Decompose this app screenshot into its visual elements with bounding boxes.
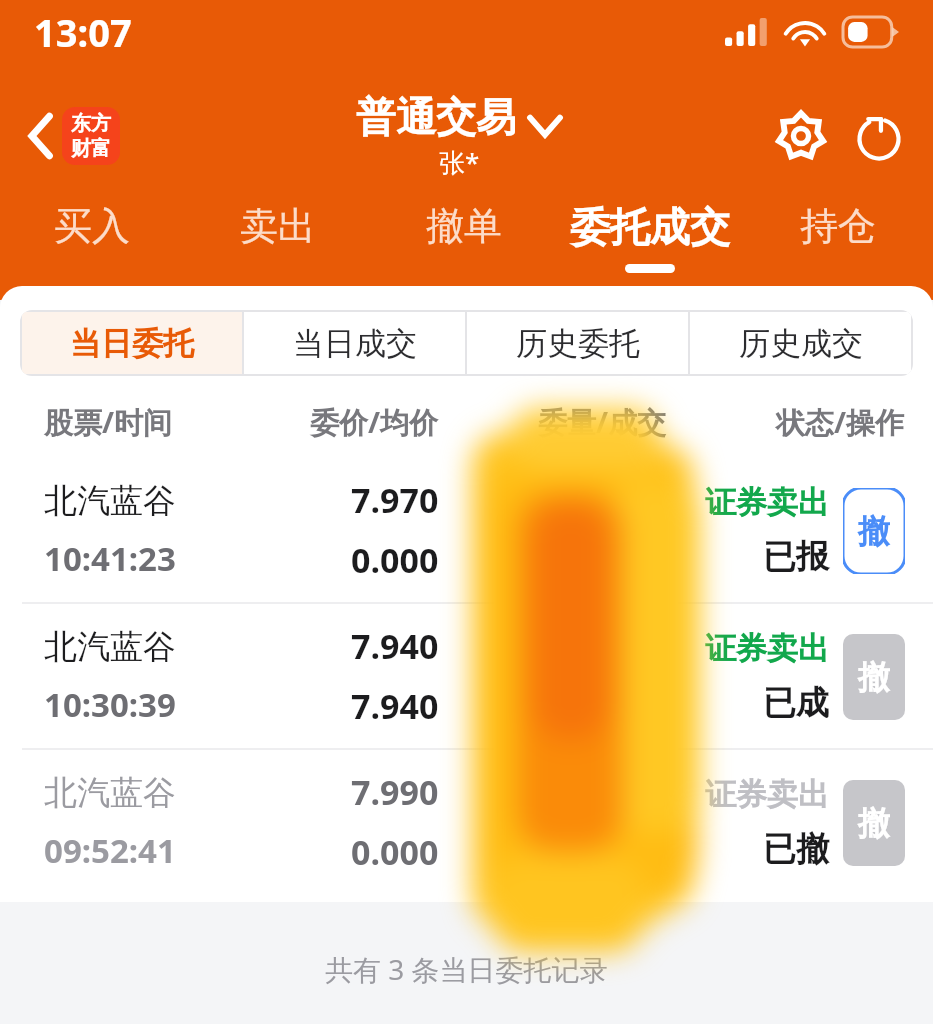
button[interactable]: 历史委托 bbox=[467, 312, 688, 374]
staticText: 撤单 bbox=[426, 202, 502, 250]
button[interactable]: 撤 bbox=[843, 488, 905, 574]
staticText: 历史委托 bbox=[516, 324, 640, 363]
button[interactable]: 北汽蓝谷 bbox=[0, 604, 933, 748]
staticText: 证券卖出 bbox=[705, 483, 829, 522]
staticText: 委价/均价 bbox=[310, 402, 439, 442]
staticText: 0.000 bbox=[351, 537, 439, 583]
button[interactable]: 委托成交 bbox=[546, 198, 754, 292]
staticText: 0.000 bbox=[351, 829, 439, 875]
staticText: 历史成交 bbox=[739, 324, 863, 363]
staticText: 已成 bbox=[763, 682, 829, 724]
button[interactable]: 撤 bbox=[843, 780, 905, 866]
staticText: 7.970 bbox=[351, 477, 439, 523]
staticText: 北汽蓝谷 bbox=[44, 626, 176, 668]
staticText: 证券卖出 bbox=[705, 629, 829, 668]
staticText: 7.990 bbox=[351, 769, 439, 815]
staticText: 卖出 bbox=[240, 202, 316, 250]
staticText: 东方 bbox=[71, 111, 111, 136]
staticText: 13:07 bbox=[34, 6, 132, 58]
staticText: 北汽蓝谷 bbox=[44, 480, 176, 522]
staticText: 已报 bbox=[763, 536, 829, 578]
staticText: 北汽蓝谷 bbox=[44, 772, 176, 814]
button[interactable]: 北汽蓝谷 bbox=[0, 458, 933, 602]
button[interactable]: East Money logo bbox=[62, 107, 120, 165]
staticText: 委托成交 bbox=[570, 202, 730, 252]
staticText: 已撤 bbox=[763, 828, 829, 870]
staticText: 当日成交 bbox=[293, 324, 417, 363]
staticText: 当日委托 bbox=[70, 324, 194, 363]
staticText: 委量/成交 bbox=[538, 402, 667, 442]
staticText: 买入 bbox=[54, 202, 130, 250]
staticText: 张* bbox=[439, 144, 480, 180]
button[interactable]: 北汽蓝谷 bbox=[0, 750, 933, 894]
staticText: 撤 bbox=[858, 511, 890, 551]
staticText: 撤 bbox=[858, 657, 890, 697]
button[interactable]: 买入 bbox=[22, 198, 162, 292]
staticText: 股票/时间 bbox=[44, 402, 173, 442]
staticText: 7.940 bbox=[351, 683, 439, 729]
button[interactable]: 当日委托 bbox=[22, 312, 242, 374]
staticText: 状态/操作 bbox=[776, 402, 905, 442]
staticText: 10:30:39 bbox=[44, 682, 176, 727]
staticText: 普通交易 bbox=[356, 92, 516, 142]
button[interactable]: 持仓 bbox=[768, 198, 908, 292]
staticText: 共有 3 条当日委托记录 bbox=[325, 950, 608, 988]
button[interactable]: Back bbox=[10, 105, 72, 167]
staticText: 证券卖出 bbox=[705, 775, 829, 814]
button[interactable]: 撤单 bbox=[394, 198, 534, 292]
staticText: 持仓 bbox=[800, 202, 876, 250]
staticText: 撤 bbox=[858, 803, 890, 843]
staticText: 09:52:41 bbox=[44, 828, 176, 873]
button[interactable]: 历史成交 bbox=[690, 312, 911, 374]
button[interactable]: 普通交易 bbox=[356, 92, 562, 180]
button[interactable]: 撤 bbox=[843, 634, 905, 720]
staticText: 财富 bbox=[71, 136, 111, 161]
button[interactable]: 当日成交 bbox=[244, 312, 465, 374]
button[interactable]: Refresh bbox=[847, 104, 911, 168]
button[interactable]: Settings bbox=[769, 104, 833, 168]
button[interactable]: 卖出 bbox=[208, 198, 348, 292]
staticText: 10:41:23 bbox=[44, 536, 176, 581]
staticText: 7.940 bbox=[351, 623, 439, 669]
